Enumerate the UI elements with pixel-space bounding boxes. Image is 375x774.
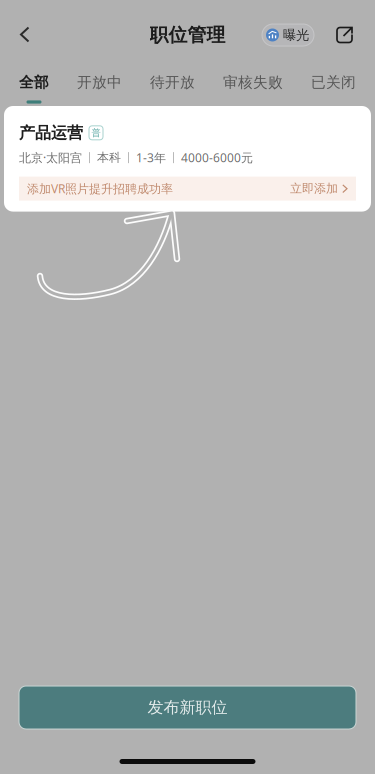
staticText: 1-3年	[136, 150, 166, 166]
staticText: 职位管理	[149, 23, 225, 46]
button[interactable]: 发布新职位	[19, 686, 356, 729]
staticText: 4000-6000元	[181, 150, 253, 166]
staticText: 立即添加	[290, 181, 338, 196]
button[interactable]: 待开放	[150, 60, 195, 104]
button[interactable]: 审核失败	[223, 60, 283, 104]
button[interactable]: 开放中	[77, 60, 122, 104]
button[interactable]: 曝光	[262, 24, 314, 46]
button[interactable]: Share	[336, 26, 353, 43]
button[interactable]: Back	[3, 13, 47, 57]
staticText: 开放中	[77, 73, 122, 91]
button[interactable]: 添加VR照片提升招聘成功率	[19, 177, 356, 201]
staticText: 审核失败	[223, 73, 283, 91]
button[interactable]: 已关闭	[311, 60, 356, 104]
staticText: 北京·太阳宫	[19, 150, 82, 166]
staticText: 添加VR照片提升招聘成功率	[27, 181, 173, 196]
staticText: 发布新职位	[147, 698, 227, 717]
staticText: 已关闭	[311, 73, 356, 91]
staticText: 曝光	[283, 27, 309, 43]
staticText: 普	[91, 127, 100, 139]
staticText: 全部	[19, 73, 49, 91]
staticText: 待开放	[150, 73, 195, 91]
staticText: 产品运营	[19, 123, 83, 143]
button[interactable]: 全部	[19, 60, 49, 104]
staticText: 本科	[97, 150, 121, 165]
